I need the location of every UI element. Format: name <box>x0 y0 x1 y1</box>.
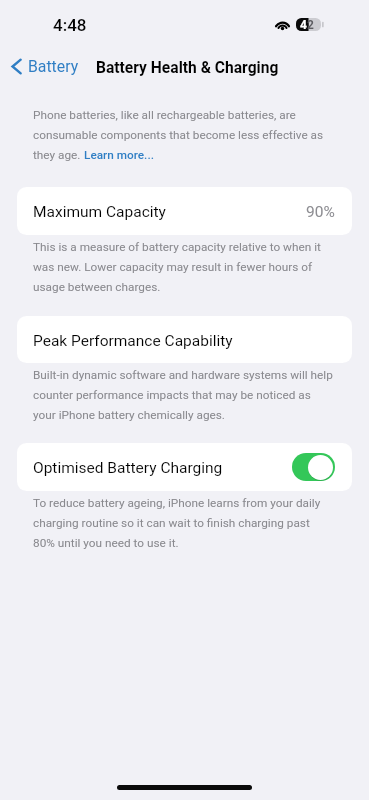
staticText: This is a measure of battery capacity re… <box>33 240 321 254</box>
staticText: Battery Health & Charging <box>96 59 279 77</box>
staticText: they age. <box>33 148 84 162</box>
staticText: consumable components that become less e… <box>33 128 324 142</box>
button[interactable]: Maximum Capacity <box>17 187 352 235</box>
staticText: counter performance impacts that may be … <box>33 388 311 402</box>
staticText: 80% until you need to use it. <box>33 536 179 550</box>
staticText: Maximum Capacity <box>33 203 166 221</box>
staticText: Phone batteries, like all rechargeable b… <box>33 108 296 122</box>
button[interactable]: Battery <box>9 51 81 82</box>
staticText: Optimised Battery Charging <box>33 459 223 477</box>
staticText: usage between charges. <box>33 280 161 294</box>
button[interactable]: Peak Performance Capability <box>17 316 352 363</box>
staticText: Battery <box>28 57 79 76</box>
button[interactable]: Learn more... <box>84 148 154 162</box>
button[interactable]: Optimised Battery Charging, on <box>292 453 335 481</box>
staticText: 4:48 <box>53 15 87 35</box>
staticText: 2 <box>307 18 314 31</box>
staticText: Built-in dynamic software and hardware s… <box>33 368 333 382</box>
staticText: Peak Performance Capability <box>33 332 233 350</box>
staticText: To reduce battery ageing, iPhone learns … <box>33 496 321 510</box>
staticText: charging routine so it can wait to finis… <box>33 516 310 530</box>
staticText: your iPhone battery chemically ages. <box>33 408 225 422</box>
staticText: 4 <box>300 18 307 31</box>
staticText: was new. Lower capacity may result in fe… <box>33 260 313 274</box>
staticText: 90% <box>306 203 335 221</box>
button[interactable]: Optimised Battery Charging <box>17 443 352 491</box>
